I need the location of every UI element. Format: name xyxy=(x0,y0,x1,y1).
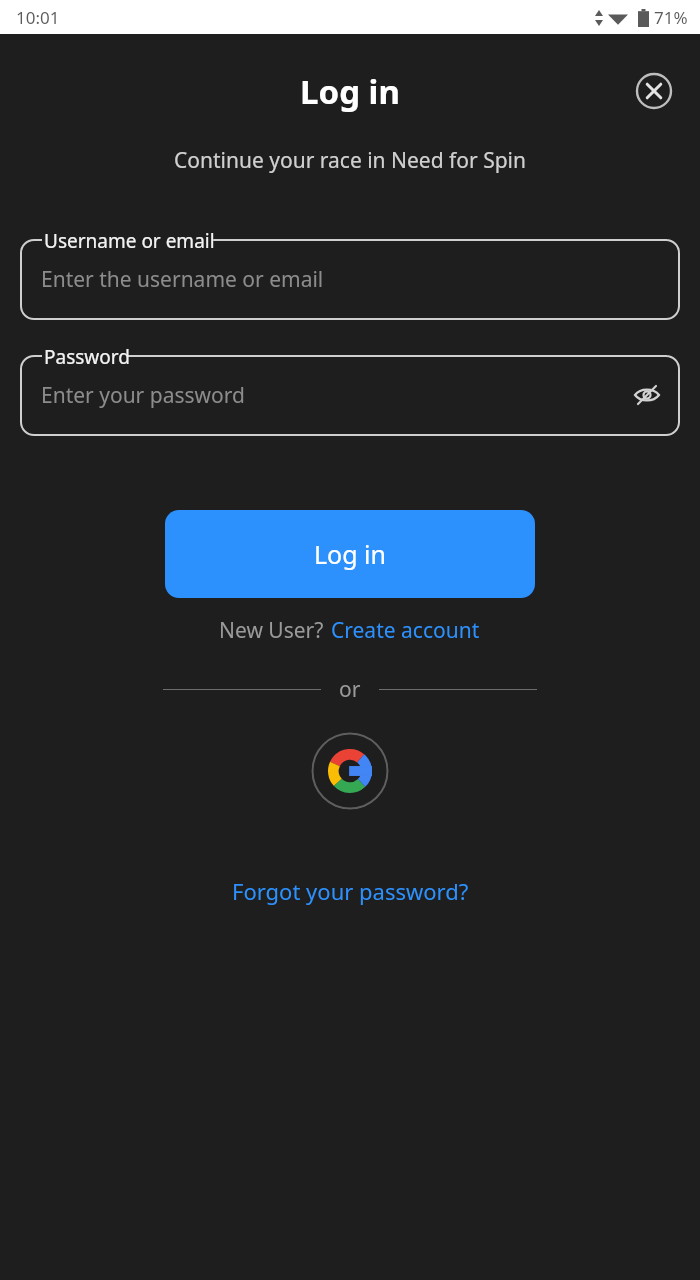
staticText: 71% xyxy=(654,6,688,29)
button[interactable]: Log in xyxy=(165,510,535,598)
staticText: Forgot your password? xyxy=(232,876,469,906)
staticText: Enter the username or email xyxy=(41,265,324,294)
button[interactable]: Create account xyxy=(329,612,482,649)
button[interactable]: Sign in with Google xyxy=(311,732,389,810)
staticText: Enter your password xyxy=(41,381,245,410)
staticText: Create account xyxy=(331,616,480,645)
button[interactable]: Close xyxy=(634,71,674,111)
button[interactable] xyxy=(20,355,680,436)
staticText: or xyxy=(339,675,361,704)
staticText: Log in xyxy=(314,537,387,571)
staticText: Username or email xyxy=(44,228,215,254)
staticText: Log in xyxy=(300,69,400,114)
staticText: 10:01 xyxy=(16,6,60,29)
button[interactable]: Show password xyxy=(626,374,668,416)
staticText: New User? xyxy=(219,616,329,645)
staticText: Password xyxy=(44,344,130,370)
button[interactable]: Forgot your password? xyxy=(220,868,481,914)
staticText: Continue your race in Need for Spin xyxy=(0,146,700,175)
button[interactable] xyxy=(20,239,680,320)
